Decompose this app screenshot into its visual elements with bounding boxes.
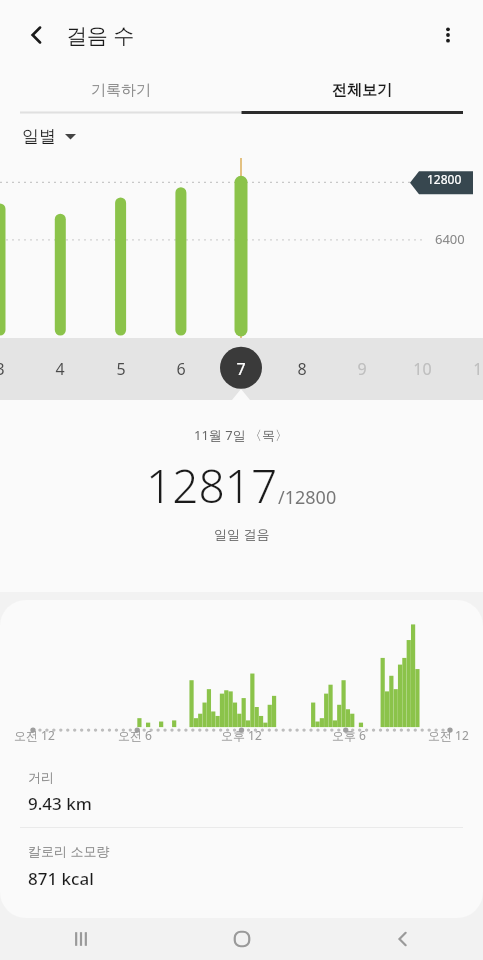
staticText: 일일 걸음: [214, 525, 270, 543]
button[interactable]: 거리: [0, 755, 483, 828]
staticText: 11월 7일 〈목〉: [194, 426, 289, 444]
staticText: 12817: [146, 454, 278, 517]
staticText: 전체보기: [332, 81, 392, 100]
button[interactable]: 8: [280, 338, 324, 400]
staticText: 오전 12: [428, 727, 469, 743]
button[interactable]: 칼로리 소모량: [0, 828, 483, 902]
button[interactable]: 9: [340, 338, 384, 400]
staticText: 오후 6: [332, 727, 366, 743]
staticText: 5: [116, 358, 126, 380]
staticText: /12800: [278, 485, 337, 510]
staticText: 12800: [427, 171, 462, 187]
staticText: 기록하기: [91, 81, 151, 100]
button[interactable]: Recent apps: [0, 918, 161, 960]
staticText: 4: [55, 358, 65, 380]
button[interactable]: 3: [0, 338, 22, 400]
button[interactable]: More options: [425, 12, 471, 58]
staticText: 거리: [28, 769, 54, 785]
staticText: 6400: [435, 230, 465, 248]
button[interactable]: 6: [159, 338, 203, 400]
button[interactable]: 11: [460, 338, 483, 400]
staticText: 9: [357, 358, 367, 380]
button[interactable]: 일별: [22, 126, 76, 147]
button[interactable]: 4: [38, 338, 82, 400]
staticText: 11: [473, 358, 483, 380]
staticText: 8: [297, 358, 307, 380]
button[interactable]: Home: [161, 918, 322, 960]
button[interactable]: 전체보기: [241, 70, 483, 111]
staticText: 오후 12: [221, 727, 262, 743]
button[interactable]: 기록하기: [0, 70, 241, 111]
button[interactable]: 5: [99, 338, 143, 400]
staticText: 7: [236, 358, 246, 380]
button[interactable]: 10: [400, 338, 444, 400]
staticText: 6: [176, 358, 186, 380]
staticText: 걸음 수: [66, 21, 135, 50]
staticText: 10: [413, 358, 432, 380]
button[interactable]: Back: [322, 918, 483, 960]
staticText: 871 kcal: [28, 867, 94, 890]
button[interactable]: 7: [219, 338, 263, 400]
staticText: 3: [0, 358, 5, 380]
staticText: 일별: [22, 126, 56, 147]
staticText: 오전 12: [14, 727, 55, 743]
staticText: 9.43 km: [28, 792, 92, 815]
button[interactable]: Back: [14, 12, 60, 58]
staticText: 칼로리 소모량: [28, 842, 110, 860]
staticText: 오전 6: [118, 727, 152, 743]
